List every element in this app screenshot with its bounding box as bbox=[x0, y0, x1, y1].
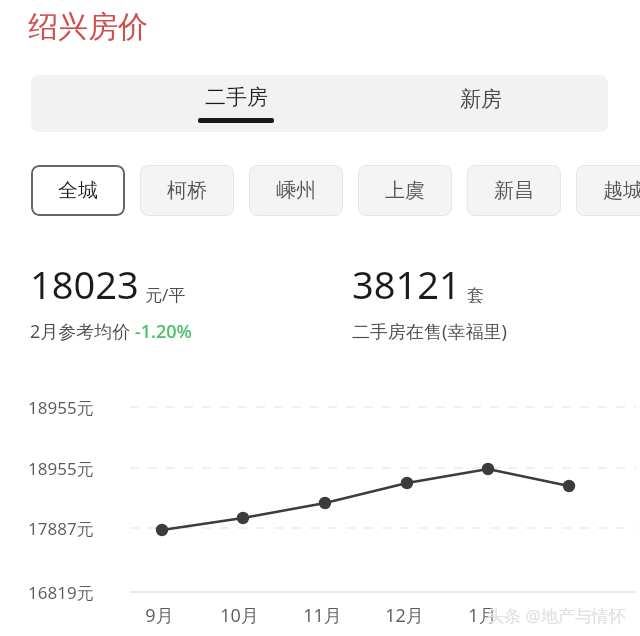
button[interactable]: 上虞 bbox=[358, 165, 452, 216]
staticText: 11月 bbox=[303, 603, 342, 628]
staticText: 全城 bbox=[58, 178, 98, 203]
staticText: 2月参考均价 bbox=[30, 319, 135, 344]
staticText: 头条 @地产与情怀 bbox=[487, 604, 626, 627]
staticText: 38121 bbox=[352, 258, 461, 310]
staticText: 上虞 bbox=[385, 178, 425, 203]
button[interactable]: 越城 bbox=[576, 165, 640, 216]
staticText: 新昌 bbox=[494, 178, 534, 203]
staticText: 12月 bbox=[385, 603, 424, 628]
staticText: 二手房 bbox=[205, 84, 268, 110]
staticText: 10月 bbox=[220, 603, 259, 628]
staticText: 1月 bbox=[468, 603, 497, 628]
button[interactable]: 二手房 bbox=[146, 75, 326, 132]
staticText: -1.20% bbox=[135, 319, 192, 344]
staticText: 绍兴房价 bbox=[28, 8, 148, 46]
staticText: 18023 bbox=[30, 258, 139, 310]
button[interactable]: 全城 bbox=[31, 165, 125, 216]
button[interactable]: 嵊州 bbox=[249, 165, 343, 216]
button[interactable]: 新昌 bbox=[467, 165, 561, 216]
button[interactable]: 柯桥 bbox=[140, 165, 234, 216]
staticText: 18955元 bbox=[28, 396, 94, 419]
staticText: 元/平 bbox=[145, 283, 186, 306]
staticText: 越城 bbox=[603, 178, 640, 203]
staticText: 嵊州 bbox=[276, 178, 316, 203]
staticText: 柯桥 bbox=[167, 178, 207, 203]
staticText: 新房 bbox=[460, 86, 502, 112]
staticText: 18955元 bbox=[28, 457, 94, 480]
staticText: 17887元 bbox=[28, 517, 94, 540]
staticText: 9月 bbox=[145, 603, 174, 628]
staticText: 二手房在售(幸福里) bbox=[352, 319, 507, 344]
button[interactable]: 新房 bbox=[401, 75, 561, 132]
staticText: 16819元 bbox=[28, 581, 94, 604]
staticText: 套 bbox=[467, 285, 484, 306]
